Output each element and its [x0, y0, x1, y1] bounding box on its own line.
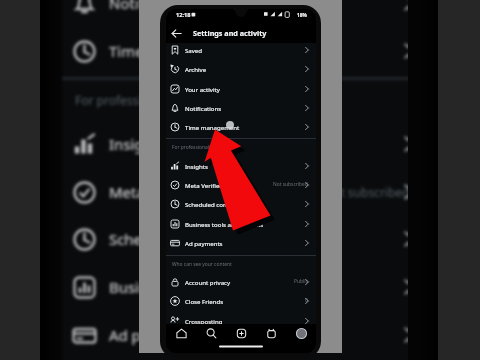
button[interactable]: Ad payments [62, 311, 408, 359]
staticText: Scheduled content [109, 229, 240, 249]
button[interactable]: Home [166, 324, 196, 342]
staticText: For professionals [75, 92, 172, 108]
button[interactable]: Insights [62, 120, 408, 168]
button[interactable]: Search [196, 324, 226, 342]
staticText: Time management [185, 123, 240, 131]
staticText: 0 [305, 297, 308, 304]
button[interactable]: Scheduled content [62, 215, 408, 263]
staticText: Notifications [109, 0, 198, 13]
staticText: Crossposting [185, 317, 223, 325]
button[interactable]: Ad payments [166, 233, 316, 252]
button[interactable]: Notifications [62, 0, 408, 27]
button[interactable]: Time management [62, 27, 408, 75]
button[interactable]: Insights [166, 156, 316, 175]
staticText: Business tools and controls [185, 220, 264, 228]
staticText: Insights [185, 162, 208, 170]
button[interactable]: Meta Verified [62, 168, 408, 216]
staticText: Meta Verified [185, 181, 224, 189]
staticText: Who can see your content [172, 261, 232, 268]
staticText: Not subscribed [273, 181, 308, 188]
staticText: Not subscribed [324, 184, 408, 200]
button[interactable]: Your activity [166, 79, 316, 98]
button[interactable]: Saved [166, 40, 316, 59]
staticText: Archive [185, 65, 207, 73]
staticText: Insights [109, 134, 166, 154]
button[interactable]: Meta Verified [166, 175, 316, 194]
staticText: For professionals [172, 144, 212, 151]
button[interactable]: Time management [166, 117, 316, 136]
button[interactable]: Archive [166, 59, 316, 78]
staticText: Close Friends [185, 297, 224, 305]
staticText: 12:18 [176, 11, 191, 19]
staticText: Ad payments [185, 239, 223, 247]
button[interactable]: Reels [256, 324, 286, 342]
button[interactable]: Notifications [166, 98, 316, 117]
staticText: Your activity [185, 85, 220, 93]
staticText: Public [294, 278, 308, 285]
staticText: Account privacy [185, 278, 231, 286]
button[interactable]: Create [226, 324, 256, 342]
button[interactable]: Business tools and controls [62, 263, 408, 311]
staticText: Scheduled content [185, 200, 239, 208]
staticText: 18% [297, 12, 307, 19]
button[interactable]: Back [168, 25, 185, 42]
staticText: Time management [109, 41, 243, 61]
button[interactable]: Business tools and controls [166, 214, 316, 233]
button[interactable]: Account privacy [166, 272, 316, 291]
button[interactable]: Profile [286, 324, 316, 342]
staticText: Notifications [185, 104, 222, 112]
staticText: Business tools and controls [109, 277, 301, 297]
staticText: Meta Verified [109, 182, 203, 202]
button[interactable]: Crossposting [166, 311, 316, 330]
staticText: Settings and activity [193, 28, 267, 38]
button[interactable]: Scheduled content [166, 194, 316, 213]
staticText: Ad payments [109, 325, 201, 345]
staticText: Saved [185, 46, 203, 54]
button[interactable]: Close Friends [166, 291, 316, 310]
